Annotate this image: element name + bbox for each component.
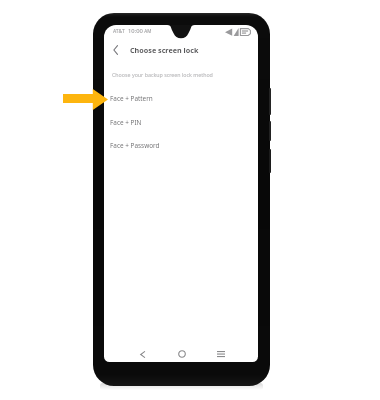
button[interactable]: Home [170, 342, 194, 366]
staticText: Face + Password [110, 141, 160, 150]
staticText: Face + PIN [110, 118, 142, 127]
button[interactable]: Recent apps [209, 342, 233, 366]
staticText: Choose your backup screen lock method [112, 71, 213, 78]
button[interactable]: Face + PIN [104, 110, 258, 134]
button[interactable]: Back [130, 342, 154, 366]
staticText: AM [143, 28, 152, 34]
button[interactable]: Face + Password [104, 133, 258, 157]
staticText: AT&T [113, 28, 125, 35]
button[interactable]: Face + Pattern [104, 86, 258, 110]
staticText: Choose screen lock [130, 45, 199, 55]
staticText: Face + Pattern [110, 94, 153, 103]
button[interactable]: Navigate up [105, 40, 125, 60]
staticText: 10:00 [128, 27, 143, 35]
